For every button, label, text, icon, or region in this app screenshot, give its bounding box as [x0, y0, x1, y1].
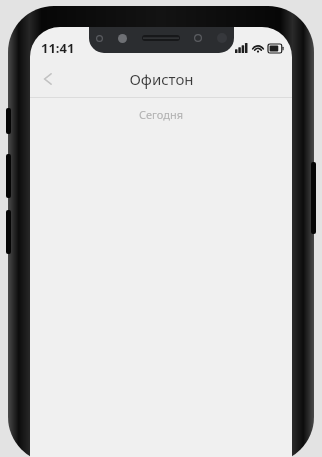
- staticText: Сегодня: [139, 107, 184, 122]
- button[interactable]: Back: [30, 61, 66, 97]
- staticText: 11:41: [41, 39, 75, 57]
- staticText: Офистон: [129, 69, 194, 89]
